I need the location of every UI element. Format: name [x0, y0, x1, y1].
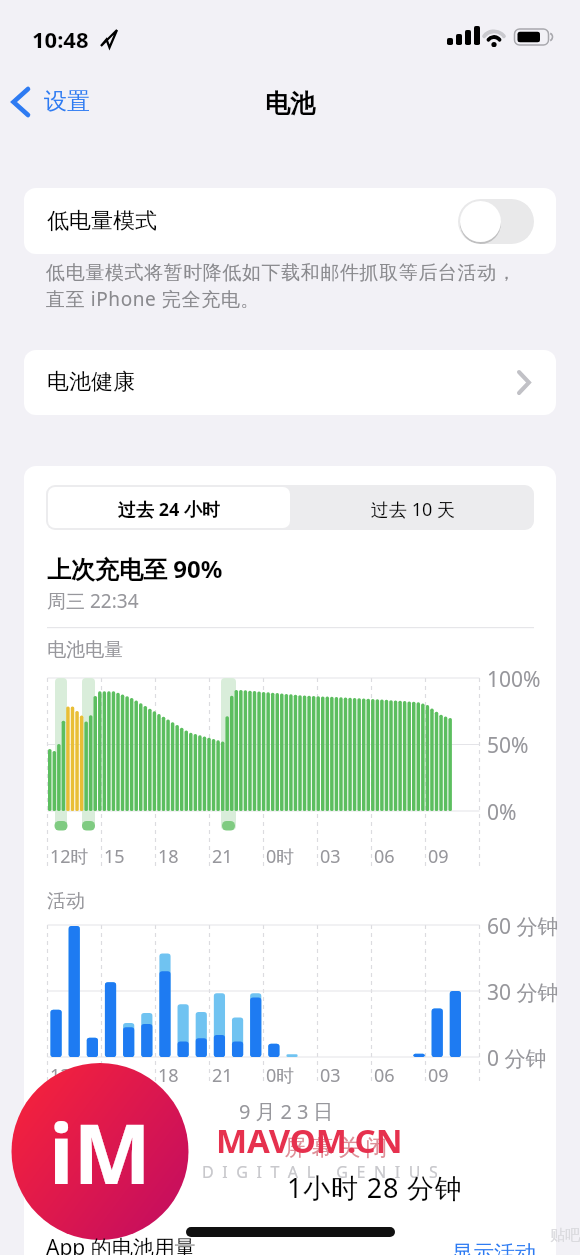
button[interactable]: 显示活动	[452, 1240, 538, 1255]
staticText: 电池电量	[47, 638, 123, 662]
staticText: 50%	[487, 731, 529, 760]
staticText: 过去 24 小时	[48, 497, 290, 522]
button[interactable]: 低电量模式	[24, 188, 556, 254]
staticText: 屏幕关闭	[282, 1134, 390, 1162]
staticText: D I G I T A L G E N I U S	[202, 1161, 440, 1183]
button[interactable]: 电池健康	[24, 350, 556, 415]
staticText: 活动	[47, 889, 85, 913]
staticText: 18	[158, 1063, 179, 1088]
staticText: 06	[374, 1063, 395, 1088]
staticText: 设置	[44, 87, 90, 116]
staticText: 0时	[266, 1063, 295, 1088]
staticText: 12时	[50, 844, 89, 869]
button[interactable]: 设置	[6, 84, 110, 120]
staticText: MAVOM.CN	[216, 1118, 403, 1163]
staticText: 09	[428, 1063, 449, 1088]
button[interactable]	[48, 487, 290, 528]
staticText: 电池健康	[47, 368, 135, 396]
staticText: 9月23日	[239, 1098, 339, 1125]
staticText: 100%	[487, 665, 541, 694]
staticText: 上次充电至 90%	[47, 552, 223, 585]
staticText: 1小时 28 分钟	[287, 1169, 463, 1206]
staticText: 18	[158, 844, 179, 869]
staticText: 06	[374, 844, 395, 869]
staticText: 贴吧	[550, 1226, 580, 1245]
staticText: 09	[428, 844, 449, 869]
staticText: 显示活动	[452, 1240, 536, 1255]
staticText: 21	[212, 844, 233, 869]
staticText: 电池	[0, 88, 580, 119]
staticText: iM	[49, 1096, 151, 1208]
staticText: 03	[320, 1063, 341, 1088]
staticText: 0%	[487, 798, 517, 827]
staticText: 周三 22:34	[47, 588, 139, 614]
staticText: App 的电池用量	[46, 1233, 196, 1255]
staticText: 15	[104, 844, 125, 869]
staticText: 21	[212, 1063, 233, 1088]
staticText: 过去 10 天	[292, 497, 534, 522]
staticText: 03	[320, 844, 341, 869]
staticText: 60 分钟	[487, 912, 559, 941]
staticText: 12时	[50, 1063, 89, 1088]
staticText: 15	[104, 1063, 125, 1088]
button[interactable]	[46, 485, 534, 530]
staticText: 0时	[266, 844, 295, 869]
staticText: 低电量模式	[47, 207, 157, 235]
staticText: 0 分钟	[487, 1044, 547, 1073]
staticText: 10:48	[32, 24, 89, 54]
staticText: 30 分钟	[487, 978, 559, 1007]
staticText: 低电量模式将暂时降低如下载和邮件抓取等后台活动， 直至 iPhone 完全充电。	[46, 261, 517, 311]
